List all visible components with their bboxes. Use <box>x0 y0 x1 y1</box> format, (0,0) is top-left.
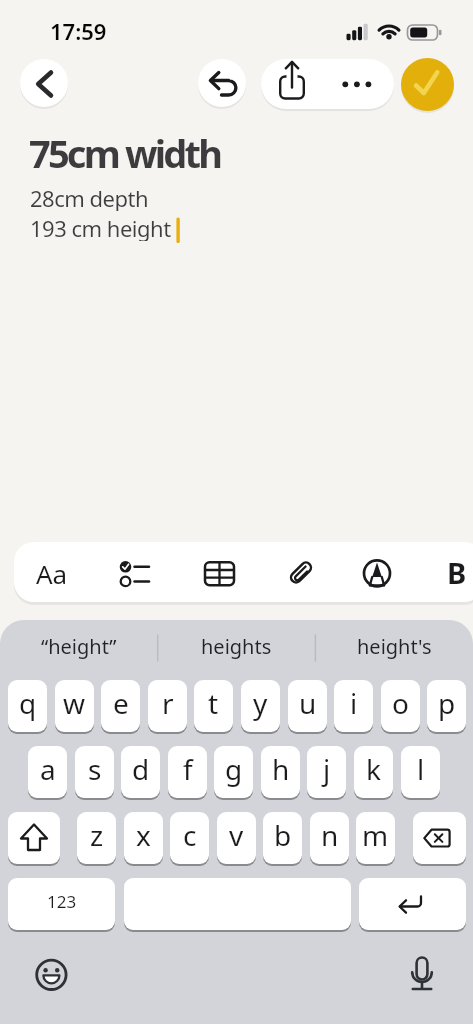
staticText: 17:59 <box>50 16 107 46</box>
staticText: r <box>162 684 174 722</box>
button[interactable]: c <box>170 812 209 864</box>
button[interactable]: r <box>148 680 187 732</box>
button[interactable] <box>413 812 466 864</box>
staticText: height's <box>357 633 432 660</box>
staticText: 28cm depth <box>30 183 149 211</box>
staticText: a <box>40 750 56 788</box>
button[interactable]: heights <box>158 630 315 662</box>
staticText: t <box>208 684 219 722</box>
button[interactable]: a <box>28 746 67 798</box>
staticText: j <box>323 750 331 788</box>
button[interactable] <box>275 550 331 594</box>
button[interactable]: g <box>214 746 253 798</box>
button[interactable]: u <box>288 680 327 732</box>
button[interactable]: Aa <box>28 555 76 591</box>
staticText: h <box>272 750 290 788</box>
button[interactable] <box>20 59 68 107</box>
button[interactable]: 123 <box>8 878 115 930</box>
button[interactable]: d <box>121 746 160 798</box>
button[interactable]: y <box>241 680 280 732</box>
staticText: m <box>362 816 389 854</box>
staticText: 193 cm height <box>30 213 171 241</box>
button[interactable]: l <box>401 746 440 798</box>
staticText: 123 <box>47 890 77 913</box>
button[interactable] <box>359 878 466 930</box>
button[interactable]: height's <box>316 630 473 662</box>
staticText: heights <box>201 633 272 660</box>
button[interactable] <box>352 550 408 594</box>
button[interactable]: h <box>261 746 300 798</box>
staticText: n <box>321 816 339 854</box>
button[interactable] <box>192 550 248 594</box>
staticText: i <box>350 684 358 722</box>
button[interactable] <box>261 59 327 109</box>
button[interactable]: b <box>263 812 302 864</box>
button[interactable]: k <box>354 746 393 798</box>
staticText: y <box>253 684 268 722</box>
button[interactable] <box>327 59 394 109</box>
staticText: s <box>88 750 102 788</box>
staticText: k <box>366 750 381 788</box>
button[interactable]: w <box>55 680 94 732</box>
staticText: f <box>183 750 193 788</box>
button[interactable]: z <box>77 812 116 864</box>
button[interactable]: i <box>334 680 373 732</box>
staticText: e <box>113 684 129 722</box>
staticText: Aa <box>36 556 68 591</box>
button[interactable] <box>33 957 71 995</box>
button[interactable]: q <box>8 680 47 732</box>
button[interactable]: m <box>356 812 395 864</box>
staticText: d <box>132 750 150 788</box>
staticText: “height” <box>41 633 117 660</box>
button[interactable]: x <box>124 812 163 864</box>
button[interactable]: o <box>381 680 420 732</box>
staticText: p <box>438 684 456 722</box>
staticText: x <box>136 816 151 854</box>
staticText: 75cm width <box>29 127 221 169</box>
staticText: z <box>90 816 104 854</box>
staticText: w <box>63 684 86 722</box>
button[interactable] <box>105 550 161 594</box>
button[interactable]: s <box>75 746 114 798</box>
button[interactable] <box>403 953 441 993</box>
staticText: B <box>447 553 467 591</box>
button[interactable]: p <box>427 680 466 732</box>
button[interactable] <box>198 59 246 107</box>
button[interactable]: t <box>194 680 233 732</box>
staticText: v <box>229 816 244 854</box>
button[interactable] <box>401 58 454 111</box>
button[interactable]: n <box>310 812 349 864</box>
button[interactable]: f <box>168 746 207 798</box>
button[interactable]: “height” <box>0 630 157 662</box>
staticText: g <box>225 750 243 788</box>
staticText: c <box>183 816 197 854</box>
button[interactable]: v <box>217 812 256 864</box>
staticText: b <box>274 816 292 854</box>
staticText: l <box>417 750 425 788</box>
staticText: o <box>392 684 409 722</box>
button[interactable]: e <box>101 680 140 732</box>
button[interactable] <box>124 878 351 930</box>
staticText: u <box>299 684 317 722</box>
button[interactable] <box>8 812 60 864</box>
button[interactable]: j <box>307 746 346 798</box>
staticText: q <box>19 684 37 722</box>
button[interactable]: B <box>440 553 473 591</box>
